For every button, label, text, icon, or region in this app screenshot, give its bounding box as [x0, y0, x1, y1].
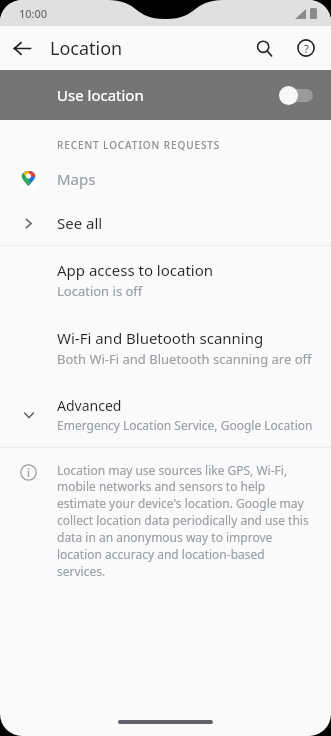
button[interactable]: Maps [0, 156, 331, 201]
staticText: 10:00 [19, 6, 48, 21]
button[interactable]: Use location [0, 70, 331, 120]
staticText: Both Wi-Fi and Bluetooth scanning are of… [57, 350, 312, 368]
button[interactable]: Search [243, 27, 285, 69]
staticText: Location is off [57, 282, 143, 300]
button[interactable]: Help [285, 27, 327, 69]
button[interactable]: See all [0, 201, 331, 245]
staticText: Wi-Fi and Bluetooth scanning [57, 328, 264, 348]
button[interactable]: App access to location [0, 246, 331, 314]
staticText: App access to location [57, 260, 214, 280]
staticText: ? [304, 41, 309, 56]
staticText: RECENT LOCATION REQUESTS [57, 138, 221, 152]
button[interactable]: Wi-Fi and Bluetooth scanning [0, 314, 331, 382]
staticText: Emergency Location Service, Google Locat… [57, 417, 319, 433]
staticText: See all [57, 213, 103, 233]
staticText: Advanced [57, 396, 122, 415]
button[interactable]: Advanced [0, 382, 331, 447]
staticText: Location may use sources like GPS, Wi-Fi… [57, 462, 313, 580]
staticText: Location [50, 36, 123, 61]
button[interactable]: Back [0, 26, 44, 70]
staticText: Use location [57, 85, 144, 105]
staticText: Maps [57, 169, 96, 189]
